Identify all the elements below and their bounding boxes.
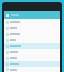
button[interactable]: More options (55, 14, 58, 17)
button[interactable]: Menu (6, 14, 9, 17)
button[interactable] (4, 19, 60, 25)
button[interactable] (4, 37, 60, 43)
button[interactable] (4, 67, 60, 72)
button[interactable] (4, 31, 60, 37)
button[interactable] (4, 25, 60, 31)
button[interactable] (4, 49, 60, 55)
button[interactable] (4, 43, 60, 49)
button[interactable] (4, 55, 60, 61)
button[interactable] (4, 61, 60, 67)
